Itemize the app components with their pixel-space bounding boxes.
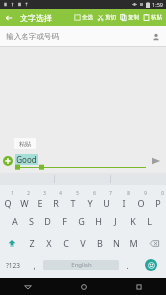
staticText: F (62, 215, 67, 227)
button[interactable]: B (91, 232, 108, 254)
staticText: R (53, 197, 59, 209)
staticText: U (103, 197, 110, 209)
button[interactable]: Recent apps (111, 278, 166, 295)
staticText: D (44, 215, 51, 227)
staticText: N (113, 237, 120, 249)
button[interactable]: 7 (98, 188, 115, 210)
button[interactable]: L (141, 210, 158, 232)
staticText: 4 (59, 190, 62, 196)
button[interactable]: S (23, 210, 39, 232)
staticText: 0 (161, 190, 164, 196)
staticText: Y (87, 197, 93, 209)
button[interactable]: Contacts (151, 32, 160, 41)
button[interactable]: Copy (118, 9, 141, 26)
staticText: A (12, 215, 18, 227)
staticText: C (63, 237, 69, 249)
staticText: 8 (127, 190, 130, 196)
button[interactable]: 8 (115, 188, 132, 210)
staticText: 5 (76, 190, 79, 196)
button[interactable]: Paste (141, 9, 164, 26)
staticText: 复制 (128, 14, 139, 21)
button[interactable]: H (90, 210, 107, 232)
button[interactable]: 4 (48, 188, 64, 210)
staticText: P (155, 197, 161, 209)
button[interactable]: ?123 (0, 254, 26, 276)
button[interactable]: K (124, 210, 141, 232)
button[interactable]: V (74, 232, 91, 254)
button[interactable]: X (40, 232, 57, 254)
staticText: 全选 (82, 14, 93, 21)
button[interactable]: N (108, 232, 125, 254)
staticText: 文字选择 (20, 13, 52, 23)
staticText: English (71, 261, 92, 269)
button[interactable]: D (39, 210, 56, 232)
button[interactable]: Select all (72, 9, 95, 26)
staticText: V (80, 237, 86, 249)
staticText: Good (16, 154, 37, 165)
button[interactable]: 2 (16, 188, 32, 210)
staticText: 输入名字或号码 (6, 32, 59, 41)
staticText: S (29, 215, 34, 227)
button[interactable]: Send (149, 154, 163, 168)
button[interactable]: 0 (149, 188, 166, 210)
staticText: M (129, 237, 138, 249)
staticText: E (37, 197, 43, 209)
button[interactable]: 3 (32, 188, 48, 210)
staticText: 3 (43, 190, 46, 196)
button[interactable]: Backspace (142, 232, 166, 254)
button[interactable]: . (119, 254, 136, 276)
staticText: Q (4, 197, 12, 209)
button[interactable]: 粘贴 (14, 138, 36, 149)
staticText: H (95, 215, 102, 227)
staticText: 2 (27, 190, 30, 196)
button[interactable]: Cut (95, 9, 118, 26)
button[interactable]: Emoji (136, 254, 166, 276)
button[interactable]: F (56, 210, 73, 232)
staticText: 6 (93, 190, 96, 196)
button[interactable]: English (43, 260, 119, 270)
staticText: L (147, 215, 152, 227)
staticText: J (114, 215, 117, 227)
button[interactable]: 9 (132, 188, 149, 210)
staticText: ?123 (6, 261, 20, 270)
button[interactable]: M (125, 232, 142, 254)
staticText: W (20, 197, 29, 209)
button[interactable]: Back (0, 9, 17, 26)
staticText: G (78, 215, 85, 227)
staticText: I (122, 197, 126, 209)
staticText: 1:59 (152, 1, 163, 8)
staticText: 1 (11, 190, 14, 196)
staticText: , (33, 260, 36, 271)
button[interactable]: A (7, 210, 23, 232)
staticText: K (130, 215, 136, 227)
button[interactable]: C (57, 232, 74, 254)
button[interactable]: Shift (0, 232, 23, 254)
staticText: T (70, 197, 76, 209)
staticText: 剪切 (105, 14, 116, 21)
staticText: 粘贴 (19, 140, 31, 148)
button[interactable]: Back (0, 278, 56, 295)
button[interactable]: Home (56, 278, 111, 295)
button[interactable]: 5 (64, 188, 81, 210)
button[interactable]: 输入名字或号码 (0, 26, 166, 46)
button[interactable]: Add attachment (2, 155, 13, 166)
button[interactable]: 6 (81, 188, 98, 210)
button[interactable]: Good (15, 151, 146, 170)
staticText: 9 (144, 190, 147, 196)
staticText: 粘贴 (151, 14, 162, 21)
staticText: O (137, 197, 145, 209)
button[interactable]: 1 (0, 188, 16, 210)
staticText: Z (29, 237, 35, 249)
staticText: . (126, 260, 129, 271)
button[interactable]: J (107, 210, 124, 232)
staticText: B (97, 237, 103, 249)
staticText: 7 (109, 190, 112, 196)
button[interactable]: Z (23, 232, 40, 254)
button[interactable]: , (26, 254, 43, 276)
staticText: X (46, 237, 52, 249)
button[interactable]: G (73, 210, 90, 232)
